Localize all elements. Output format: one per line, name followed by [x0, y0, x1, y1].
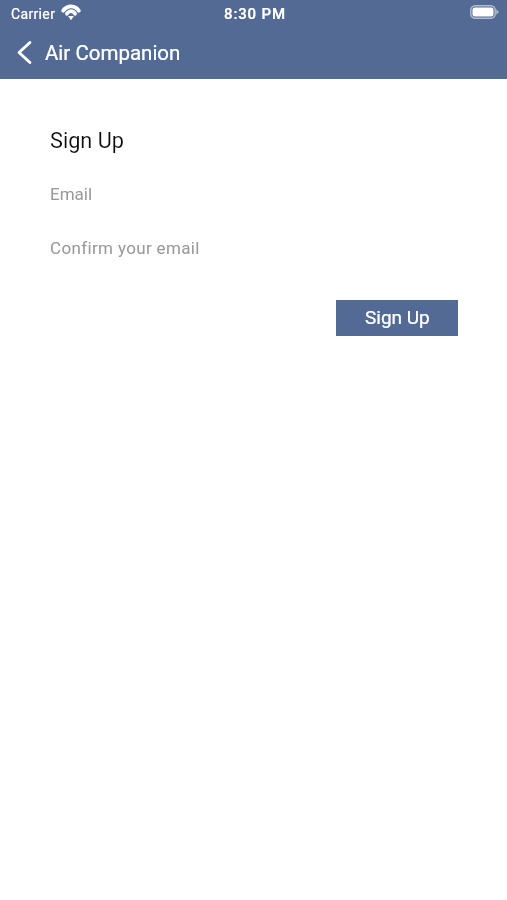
- staticText: Sign Up: [50, 128, 124, 153]
- staticText: Email: [50, 184, 93, 204]
- staticText: Air Companion: [45, 41, 181, 65]
- staticText: Sign Up: [365, 306, 430, 328]
- button[interactable]: Confirm your email: [50, 232, 458, 264]
- button[interactable]: Sign Up: [336, 300, 458, 336]
- staticText: 8:30 PM: [224, 5, 286, 23]
- staticText: Confirm your email: [50, 238, 200, 258]
- button[interactable]: Email: [50, 178, 458, 210]
- staticText: Carrier: [11, 6, 56, 22]
- button[interactable]: Back: [14, 35, 34, 71]
